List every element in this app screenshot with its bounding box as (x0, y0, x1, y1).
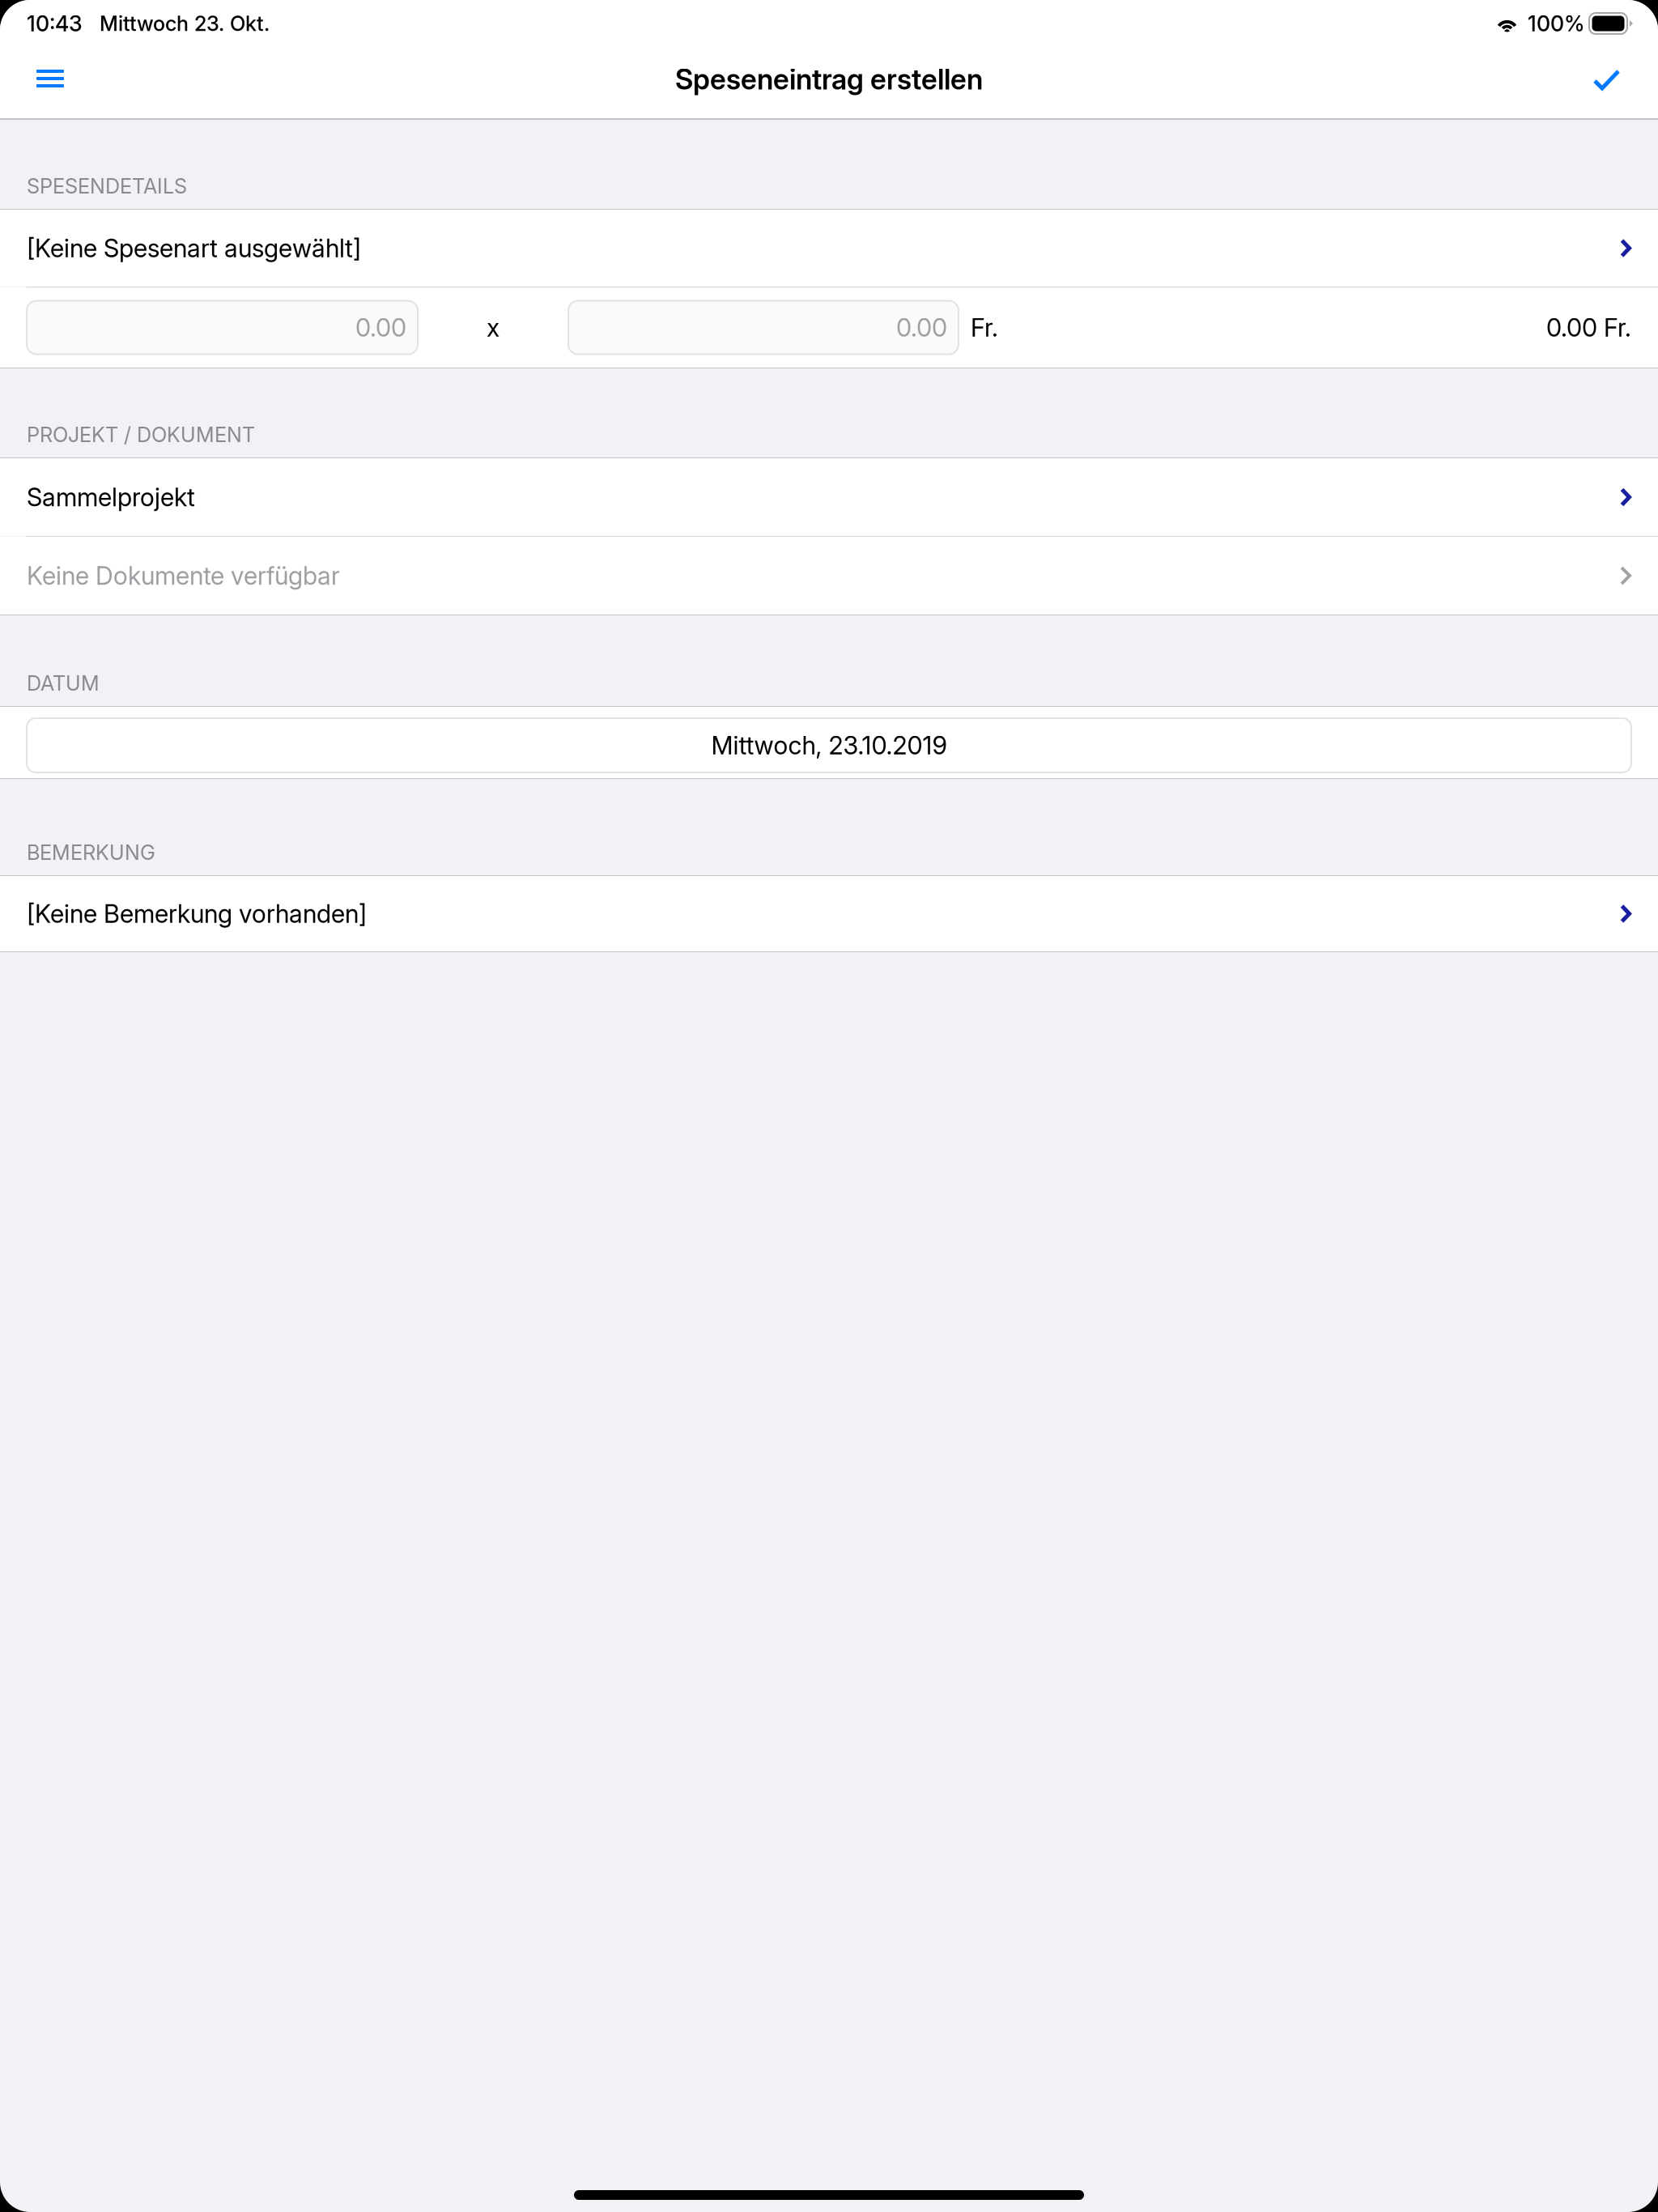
staticText: 0.00 Fr. (1546, 312, 1631, 342)
button[interactable]: [Keine Spesenart ausgewählt] (0, 210, 1658, 287)
button[interactable]: Menü (0, 47, 113, 120)
staticText: PROJEKT / DOKUMENT (27, 422, 255, 447)
staticText: [Keine Bemerkung vorhanden] (27, 899, 367, 929)
staticText: x (487, 312, 500, 342)
button[interactable]: Keine Dokumente verfügbar (0, 537, 1658, 615)
staticText: Fr. (971, 312, 998, 342)
staticText: [Keine Spesenart ausgewählt] (27, 233, 361, 263)
staticText: Sammelprojekt (27, 482, 195, 512)
staticText: 100% (1528, 10, 1584, 37)
staticText: DATUM (27, 671, 100, 696)
staticText: 10:43 (27, 10, 83, 37)
staticText: Speseneintrag erstellen (675, 62, 983, 96)
staticText: SPESENDETAILS (27, 174, 187, 198)
staticText: BEMERKUNG (27, 840, 155, 865)
button[interactable]: Speichern (1545, 47, 1658, 120)
button[interactable]: Mittwoch, 23.10.2019 (0, 707, 1658, 778)
staticText: Mittwoch, 23.10.2019 (711, 730, 947, 760)
staticText: Mittwoch 23. Okt. (100, 11, 270, 36)
staticText: 0.00 (355, 312, 406, 342)
button[interactable]: [Keine Bemerkung vorhanden] (0, 876, 1658, 951)
button[interactable]: Sammelprojekt (0, 458, 1658, 536)
staticText: Keine Dokumente verfügbar (27, 561, 340, 591)
staticText: 0.00 (896, 312, 947, 342)
